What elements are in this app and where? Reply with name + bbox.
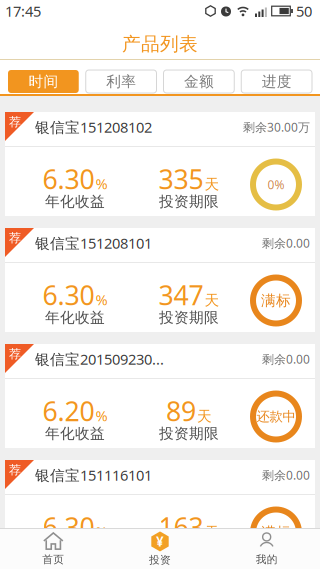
staticText: 投资期限 xyxy=(159,193,219,211)
staticText: 时间 xyxy=(28,72,58,90)
staticText: 6.30 xyxy=(42,277,94,313)
staticText: 首页 xyxy=(42,553,64,566)
staticText: 我的 xyxy=(256,553,278,566)
button[interactable]: 金额 xyxy=(163,70,234,93)
staticText: 天 xyxy=(204,175,219,193)
staticText: 还款中 xyxy=(256,408,295,425)
staticText: 投资期限 xyxy=(159,425,219,443)
staticText: % xyxy=(95,174,107,193)
staticText: 剩余0.00 xyxy=(262,467,310,483)
staticText: 投资期限 xyxy=(159,541,219,559)
button[interactable]: ¥ xyxy=(107,531,213,566)
staticText: 利率 xyxy=(106,72,136,90)
staticText: 荐 xyxy=(9,231,21,245)
staticText: 335 xyxy=(158,161,203,197)
staticText: 天 xyxy=(197,407,212,425)
staticText: 17:45 xyxy=(5,1,41,21)
button[interactable]: 利率 xyxy=(86,70,157,93)
staticText: 天 xyxy=(204,523,219,541)
staticText: 天 xyxy=(204,291,219,309)
staticText: 投资 xyxy=(149,553,171,566)
button[interactable]: 银信宝151208101 xyxy=(5,228,315,332)
staticText: 6.30 xyxy=(42,161,94,197)
button[interactable]: 首页 xyxy=(0,532,107,566)
staticText: 347 xyxy=(158,277,203,313)
staticText: 荐 xyxy=(9,463,21,477)
staticText: 年化收益 xyxy=(45,541,105,559)
staticText: 年化收益 xyxy=(45,193,105,211)
staticText: 进度 xyxy=(262,72,292,90)
staticText: ¥ xyxy=(156,533,164,550)
staticText: 银信宝151208102 xyxy=(35,117,152,137)
staticText: 年化收益 xyxy=(45,309,105,327)
button[interactable]: 银信宝201509230... xyxy=(5,344,315,448)
staticText: 6.30 xyxy=(42,509,94,545)
staticText: 银信宝151208101 xyxy=(35,233,152,253)
staticText: 产品列表 xyxy=(122,32,198,55)
button[interactable]: 银信宝151208102 xyxy=(5,112,315,216)
staticText: 荐 xyxy=(9,115,21,129)
staticText: 满标 xyxy=(261,523,291,541)
staticText: % xyxy=(95,290,107,309)
staticText: 剩余30.00万 xyxy=(243,119,310,135)
staticText: 6.20 xyxy=(42,393,94,429)
staticText: 89 xyxy=(166,393,196,429)
staticText: 银信宝201509230... xyxy=(35,349,164,369)
staticText: 银信宝151116101 xyxy=(35,465,152,485)
staticText: 荐 xyxy=(9,347,21,361)
staticText: 剩余0.00 xyxy=(262,235,310,251)
staticText: 剩余0.00 xyxy=(262,351,310,367)
staticText: 金额 xyxy=(184,72,214,90)
staticText: % xyxy=(95,406,107,425)
button[interactable]: 银信宝151116101 xyxy=(5,460,315,564)
button[interactable]: 进度 xyxy=(241,70,312,93)
staticText: 0% xyxy=(267,176,284,192)
staticText: 50 xyxy=(296,1,312,21)
button[interactable]: 我的 xyxy=(213,532,320,566)
staticText: 投资期限 xyxy=(159,309,219,327)
staticText: % xyxy=(95,522,107,541)
staticText: 163 xyxy=(158,509,203,545)
staticText: 满标 xyxy=(261,291,291,309)
button[interactable]: 时间 xyxy=(8,70,79,93)
staticText: 年化收益 xyxy=(45,425,105,443)
